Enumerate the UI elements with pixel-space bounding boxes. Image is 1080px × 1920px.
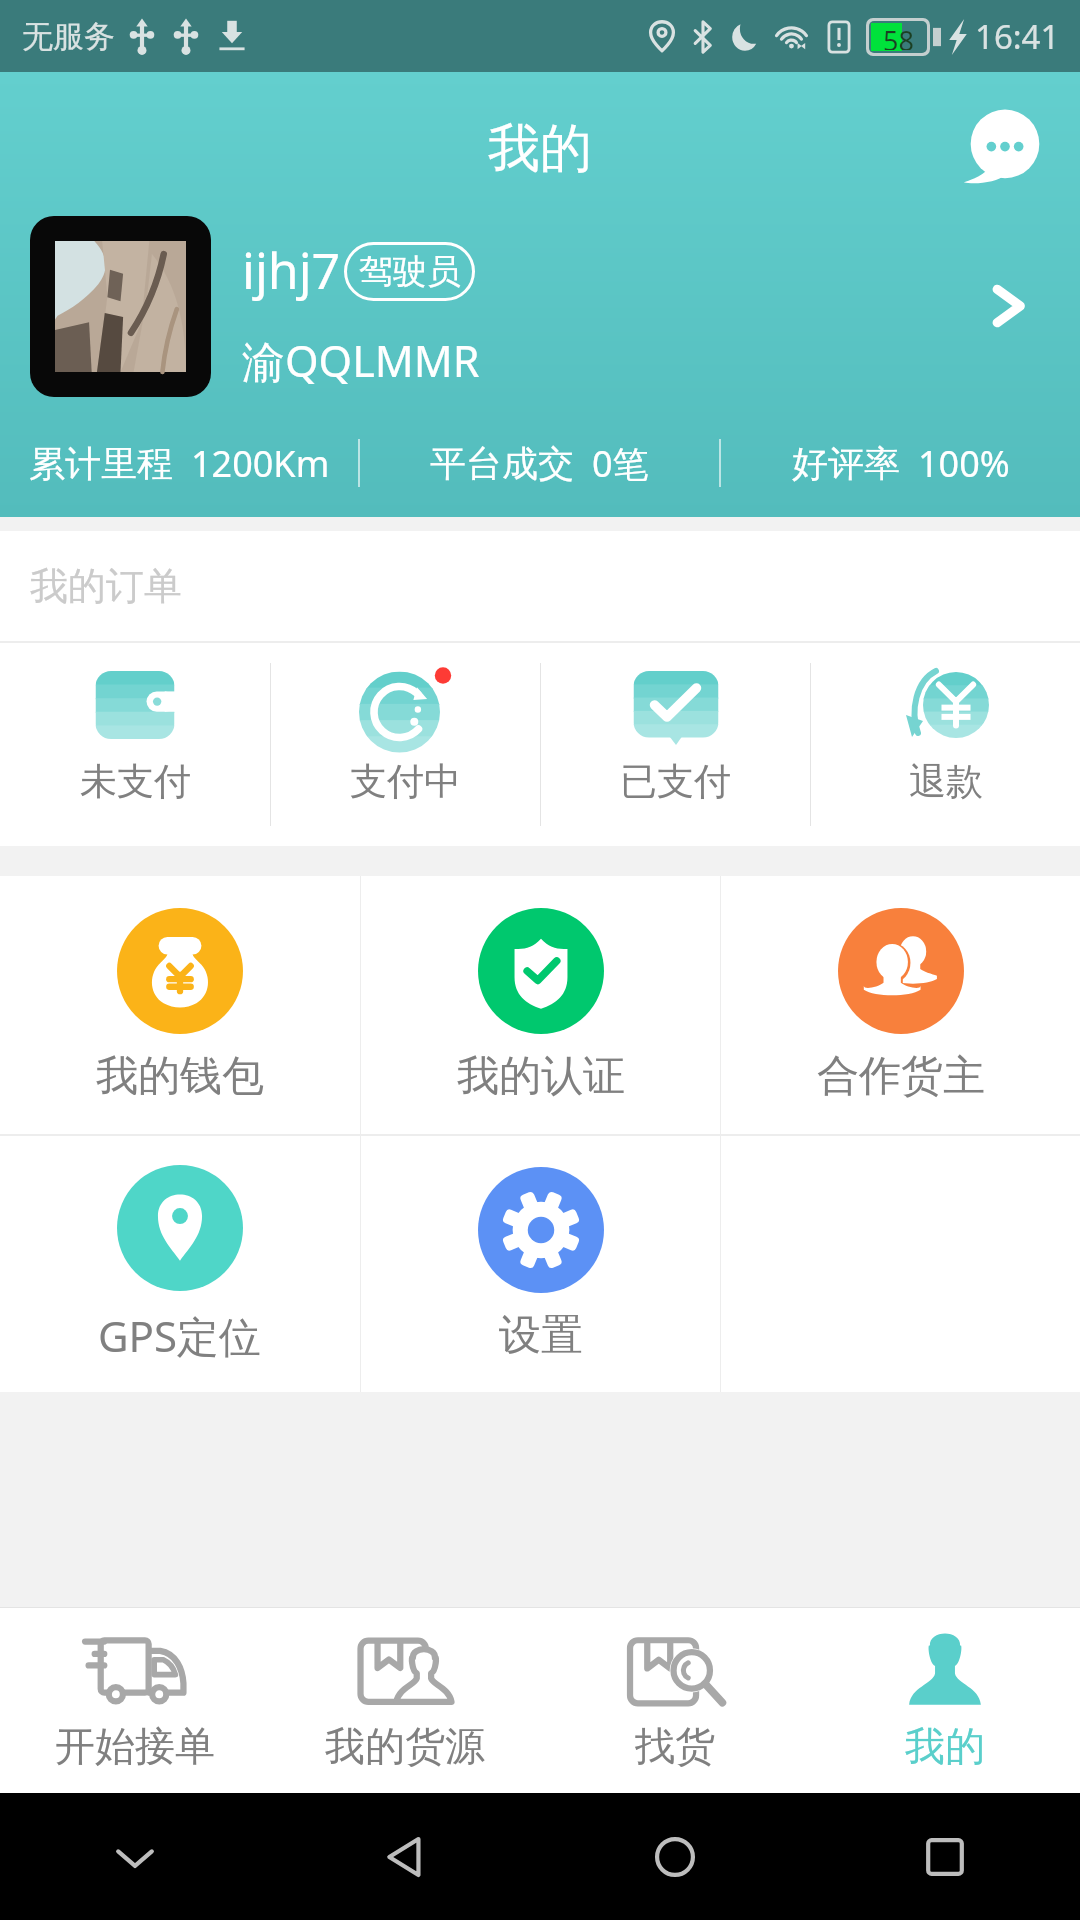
staticText: 退款 xyxy=(909,758,983,805)
staticText: 开始接单 xyxy=(55,1721,215,1771)
staticText: 支付中 xyxy=(350,758,461,805)
button[interactable]: ijhj7 xyxy=(0,216,1080,397)
staticText: 16:41 xyxy=(975,14,1060,59)
staticText: 累计里程 xyxy=(29,441,173,486)
staticText: 我的 xyxy=(488,116,592,182)
button[interactable]: 已支付 xyxy=(541,643,810,846)
staticText: GPS定位 xyxy=(98,1307,262,1364)
staticText: 已支付 xyxy=(620,758,731,805)
staticText: 平台成交 xyxy=(430,441,574,486)
button[interactable]: 我的钱包 xyxy=(0,876,360,1134)
staticText: 1200Km xyxy=(191,439,330,488)
staticText: 我的认证 xyxy=(457,1050,625,1103)
button[interactable]: 我的认证 xyxy=(361,876,720,1134)
staticText: 我的 xyxy=(905,1721,985,1771)
button[interactable]: 找货 xyxy=(540,1608,810,1793)
staticText: 我的钱包 xyxy=(96,1050,264,1103)
staticText: 无服务 xyxy=(22,17,115,56)
button[interactable]: 开始接单 xyxy=(0,1608,270,1793)
staticText: 我的订单 xyxy=(30,562,182,610)
staticText: 渝QQLMMR xyxy=(242,331,480,390)
button[interactable]: 我的货源 xyxy=(270,1608,540,1793)
staticText: ijhj7 xyxy=(242,236,341,304)
button[interactable]: Messages xyxy=(966,108,1044,186)
button[interactable]: 设置 xyxy=(361,1136,720,1392)
button[interactable]: 合作货主 xyxy=(721,876,1080,1134)
staticText: 我的货源 xyxy=(325,1721,485,1771)
staticText: 0笔 xyxy=(592,439,649,488)
staticText: 100% xyxy=(918,439,1010,488)
staticText: 驾驶员 xyxy=(359,250,461,293)
button[interactable]: 未支付 xyxy=(0,643,270,846)
button[interactable]: GPS定位 xyxy=(0,1136,360,1392)
staticText: 未支付 xyxy=(80,758,191,805)
staticText: 设置 xyxy=(499,1309,583,1362)
staticText: 好评率 xyxy=(792,441,900,486)
staticText: 58 xyxy=(883,22,914,50)
button[interactable]: 我的 xyxy=(810,1608,1080,1793)
staticText: 找货 xyxy=(635,1721,715,1771)
button[interactable]: 支付中 xyxy=(271,643,540,846)
staticText: 合作货主 xyxy=(817,1050,985,1103)
button[interactable]: 退款 xyxy=(811,643,1080,846)
